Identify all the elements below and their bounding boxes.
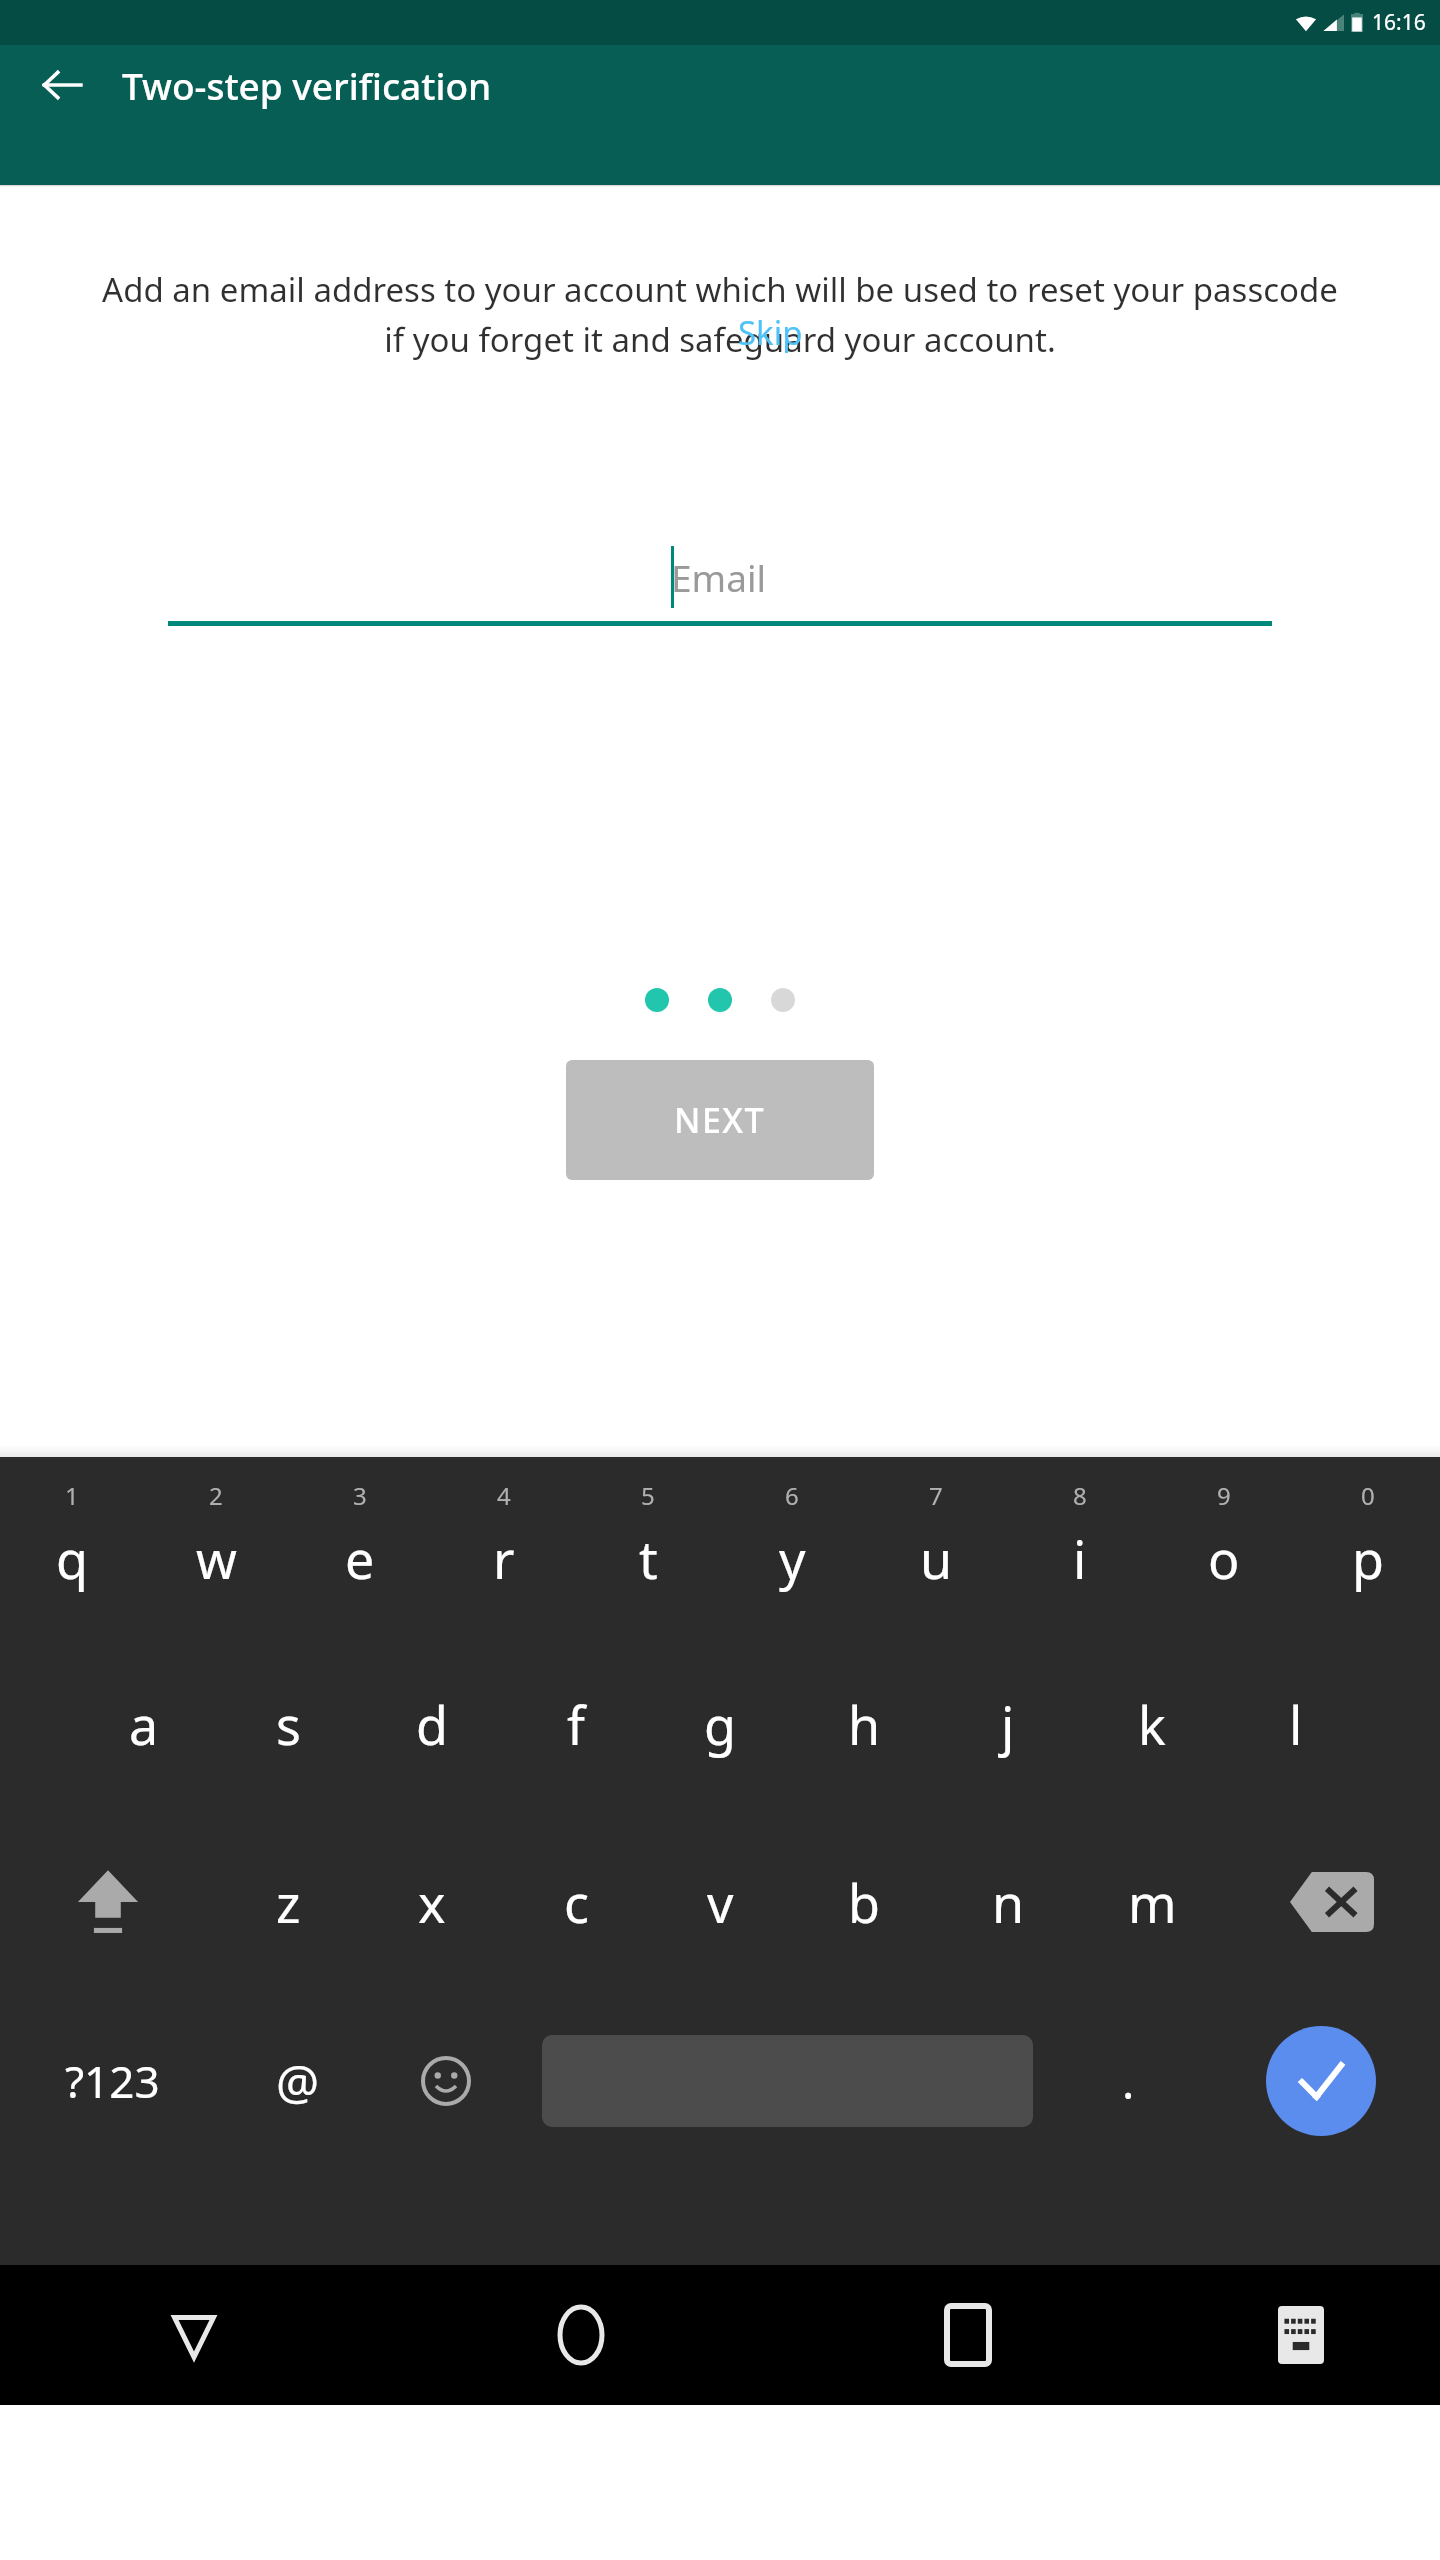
button[interactable]: Back <box>22 45 102 125</box>
button[interactable]: @ <box>224 1991 372 2171</box>
button[interactable]: Emoji <box>372 1991 520 2171</box>
staticText: y <box>779 1523 806 1594</box>
button[interactable]: z <box>216 1813 360 1991</box>
button[interactable]: 4 <box>432 1457 576 1635</box>
staticText: 2 <box>209 1479 223 1512</box>
button[interactable]: f <box>504 1635 648 1813</box>
staticText: NEXT <box>674 1097 766 1143</box>
staticText: p <box>1352 1523 1384 1594</box>
button[interactable]: Home <box>387 2265 774 2405</box>
button[interactable]: NEXT <box>566 1060 874 1180</box>
button[interactable]: Email <box>168 539 1272 615</box>
staticText: k <box>1138 1689 1166 1760</box>
button[interactable]: h <box>792 1635 936 1813</box>
button[interactable]: x <box>360 1813 504 1991</box>
staticText: 8 <box>1073 1479 1087 1512</box>
button[interactable]: v <box>648 1813 792 1991</box>
staticText: b <box>848 1867 880 1938</box>
button[interactable]: Space <box>520 1991 1054 2171</box>
staticText: n <box>992 1867 1025 1938</box>
staticText: Email <box>671 552 767 602</box>
staticText: d <box>416 1689 448 1760</box>
staticText: @ <box>276 2049 320 2114</box>
staticText: 3 <box>353 1479 367 1512</box>
button[interactable]: 1 <box>0 1457 144 1635</box>
staticText: m <box>1128 1867 1177 1938</box>
staticText: Two-step verification <box>122 60 492 110</box>
staticText: 9 <box>1217 1479 1231 1512</box>
button[interactable]: 7 <box>864 1457 1008 1635</box>
staticText: v <box>707 1867 734 1938</box>
staticText: x <box>418 1867 446 1938</box>
staticText: 16:16 <box>1372 8 1426 37</box>
staticText: h <box>848 1689 881 1760</box>
button[interactable]: Back <box>0 2265 387 2405</box>
button[interactable]: 3 <box>288 1457 432 1635</box>
button[interactable]: k <box>1080 1635 1224 1813</box>
button[interactable]: Skip <box>738 310 803 355</box>
button[interactable]: ?123 <box>0 1991 224 2171</box>
staticText: e <box>345 1523 375 1594</box>
button[interactable]: j <box>936 1635 1080 1813</box>
button[interactable]: Recents <box>774 2265 1161 2405</box>
button[interactable]: m <box>1080 1813 1224 1991</box>
staticText: Skip <box>738 310 803 355</box>
staticText: Add an email address to your account whi… <box>95 267 1345 362</box>
staticText: 4 <box>497 1479 511 1512</box>
staticText: 7 <box>929 1479 943 1512</box>
button[interactable]: . <box>1054 1991 1202 2171</box>
button[interactable]: Backspace <box>1224 1813 1440 1991</box>
staticText: 6 <box>785 1479 799 1512</box>
staticText: q <box>56 1523 88 1594</box>
staticText: s <box>276 1689 301 1760</box>
staticText: l <box>1289 1689 1303 1760</box>
button[interactable]: 6 <box>720 1457 864 1635</box>
staticText: i <box>1073 1523 1087 1594</box>
button[interactable]: l <box>1224 1635 1368 1813</box>
staticText: t <box>639 1523 658 1594</box>
staticText: 1 <box>65 1479 79 1512</box>
staticText: c <box>564 1867 589 1938</box>
staticText: f <box>567 1689 585 1760</box>
button[interactable]: 2 <box>144 1457 288 1635</box>
button[interactable]: 0 <box>1296 1457 1440 1635</box>
button[interactable]: 9 <box>1152 1457 1296 1635</box>
staticText: j <box>1001 1689 1015 1760</box>
button[interactable]: Enter <box>1202 1991 1440 2171</box>
staticText: . <box>1122 2050 1135 2113</box>
staticText: a <box>129 1689 159 1760</box>
staticText: r <box>493 1523 515 1594</box>
button[interactable]: b <box>792 1813 936 1991</box>
staticText: z <box>276 1867 301 1938</box>
staticText: ?123 <box>65 2051 160 2111</box>
button[interactable]: s <box>216 1635 360 1813</box>
button[interactable]: Shift <box>0 1813 216 1991</box>
staticText: u <box>920 1523 953 1594</box>
staticText: 0 <box>1361 1479 1375 1512</box>
staticText: o <box>1208 1523 1240 1594</box>
button[interactable]: n <box>936 1813 1080 1991</box>
button[interactable]: d <box>360 1635 504 1813</box>
button[interactable]: a <box>72 1635 216 1813</box>
button[interactable]: 8 <box>1008 1457 1152 1635</box>
button[interactable]: g <box>648 1635 792 1813</box>
button[interactable]: c <box>504 1813 648 1991</box>
button[interactable]: 5 <box>576 1457 720 1635</box>
staticText: 5 <box>641 1479 655 1512</box>
staticText: g <box>704 1689 736 1760</box>
staticText: w <box>196 1523 237 1594</box>
button[interactable]: Hide keyboard <box>1161 2265 1440 2405</box>
